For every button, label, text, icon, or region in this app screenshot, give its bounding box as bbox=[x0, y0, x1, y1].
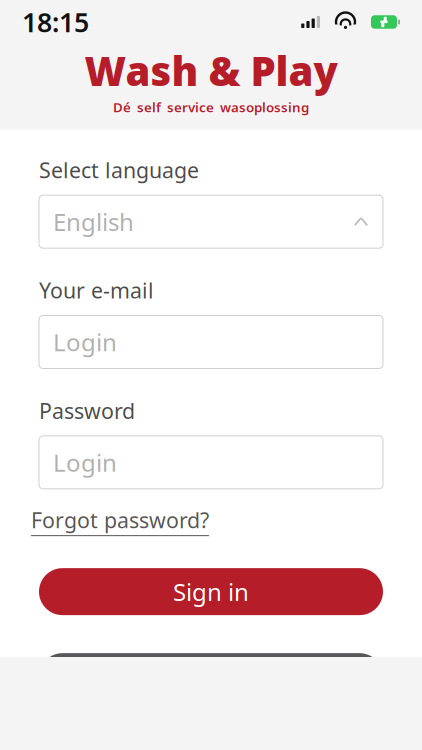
staticText: Login bbox=[53, 326, 117, 358]
staticText: 18:15 bbox=[22, 4, 89, 40]
staticText: Password bbox=[39, 396, 135, 425]
staticText: Select language bbox=[39, 156, 199, 184]
staticText: Login bbox=[53, 446, 117, 478]
button[interactable]: Login bbox=[39, 436, 383, 489]
staticText: Sign in bbox=[173, 576, 249, 608]
button[interactable]: Forgot password? bbox=[31, 506, 209, 536]
button[interactable]: English bbox=[39, 195, 383, 248]
button[interactable]: Create account bbox=[39, 653, 383, 700]
button[interactable]: Login bbox=[39, 315, 383, 368]
staticText: Dé self service wasoplossing bbox=[113, 98, 309, 116]
staticText: Wash & Play bbox=[84, 44, 337, 97]
staticText: Forgot password? bbox=[31, 506, 209, 534]
button[interactable]: Sign in bbox=[39, 568, 383, 615]
staticText: Your e-mail bbox=[39, 276, 154, 304]
staticText: English bbox=[53, 206, 134, 238]
